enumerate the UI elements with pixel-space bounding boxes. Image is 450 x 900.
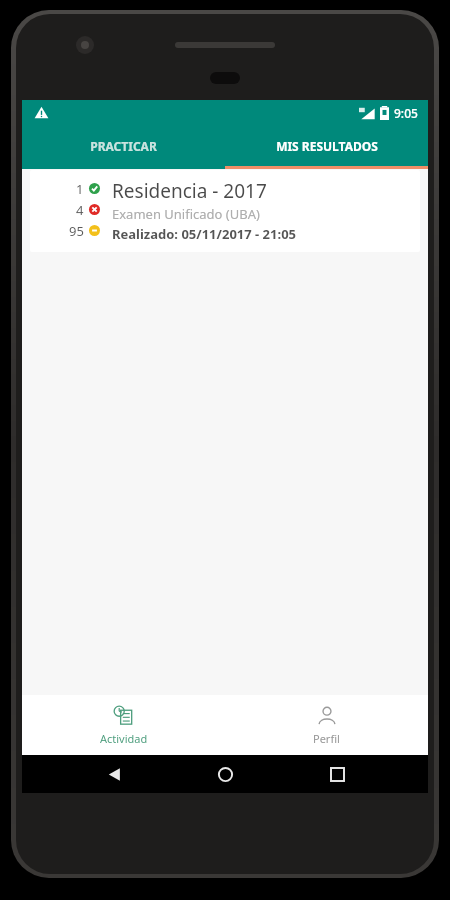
button[interactable]: Recents	[317, 755, 357, 793]
staticText: 95	[69, 222, 84, 240]
staticText: Residencia - 2017	[112, 178, 267, 204]
button[interactable]: Home	[205, 755, 245, 793]
other: Actividad	[112, 704, 136, 728]
button[interactable]: Back	[94, 755, 134, 793]
button[interactable]: Perfil	[225, 695, 428, 755]
button[interactable]: MIS RESULTADOS	[225, 125, 428, 166]
staticText: 4	[76, 201, 84, 219]
staticText: Actividad	[100, 731, 148, 746]
staticText: Realizado: 05/11/2017 - 21:05	[112, 225, 297, 243]
other: Perfil	[315, 704, 339, 728]
button[interactable]: 1	[30, 170, 420, 252]
staticText: Perfil	[313, 731, 340, 746]
staticText: 1	[76, 180, 84, 198]
staticText: MIS RESULTADOS	[276, 138, 378, 154]
staticText: Examen Unificado (UBA)	[112, 205, 260, 223]
staticText: 9:05	[394, 105, 418, 121]
button[interactable]: PRACTICAR	[22, 125, 225, 166]
button[interactable]: Actividad	[22, 695, 225, 755]
staticText: PRACTICAR	[90, 138, 157, 154]
